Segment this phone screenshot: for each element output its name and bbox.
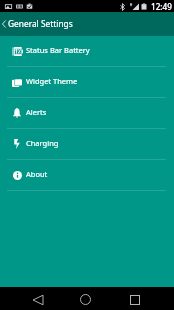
- staticText: Charging: [26, 138, 59, 148]
- button[interactable]: Recent apps: [119, 287, 151, 310]
- button[interactable]: Home: [69, 287, 101, 310]
- staticText: 12:49: [151, 1, 172, 12]
- staticText: About: [26, 169, 48, 179]
- staticText: General Settings: [8, 18, 73, 29]
- button[interactable]: Widget Theme: [0, 67, 174, 97]
- staticText: Status Bar Battery: [26, 45, 90, 55]
- button[interactable]: Status Bar Battery: [0, 36, 174, 66]
- button[interactable]: About: [0, 160, 174, 190]
- button[interactable]: Alerts: [0, 98, 174, 128]
- staticText: Widget Theme: [26, 76, 78, 86]
- button[interactable]: Back: [22, 287, 54, 310]
- button[interactable]: Navigate up: [0, 12, 8, 36]
- staticText: Alerts: [26, 107, 47, 117]
- button[interactable]: Charging: [0, 129, 174, 159]
